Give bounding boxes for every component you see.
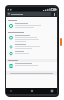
button[interactable]: [7, 12, 51, 16]
button[interactable]: [6, 43, 57, 50]
button[interactable]: [6, 22, 57, 29]
button[interactable]: [6, 62, 57, 69]
button[interactable]: More options: [52, 12, 56, 16]
button[interactable]: [6, 34, 57, 43]
button[interactable]: [6, 50, 57, 57]
button[interactable]: Back: [9, 89, 13, 93]
button[interactable]: [6, 71, 57, 75]
button[interactable]: Recents: [50, 89, 54, 93]
other: Side key: [60, 38, 62, 46]
button[interactable]: Home: [30, 89, 34, 93]
